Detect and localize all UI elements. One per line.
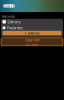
button[interactable]: Upgrade [1, 38, 63, 46]
staticText: Search [3, 3, 15, 9]
staticText: Upgrade [24, 37, 39, 42]
button[interactable]: Favorites [1, 25, 63, 31]
staticText: Get more [25, 43, 38, 46]
button[interactable]: Library [1, 19, 63, 25]
staticText: Recents [2, 13, 15, 19]
staticText: Continue [24, 30, 39, 36]
staticText: Library [7, 19, 20, 24]
button[interactable]: Search [3, 4, 15, 8]
button[interactable]: Continue [2, 31, 61, 35]
staticText: Favorites [7, 25, 23, 30]
